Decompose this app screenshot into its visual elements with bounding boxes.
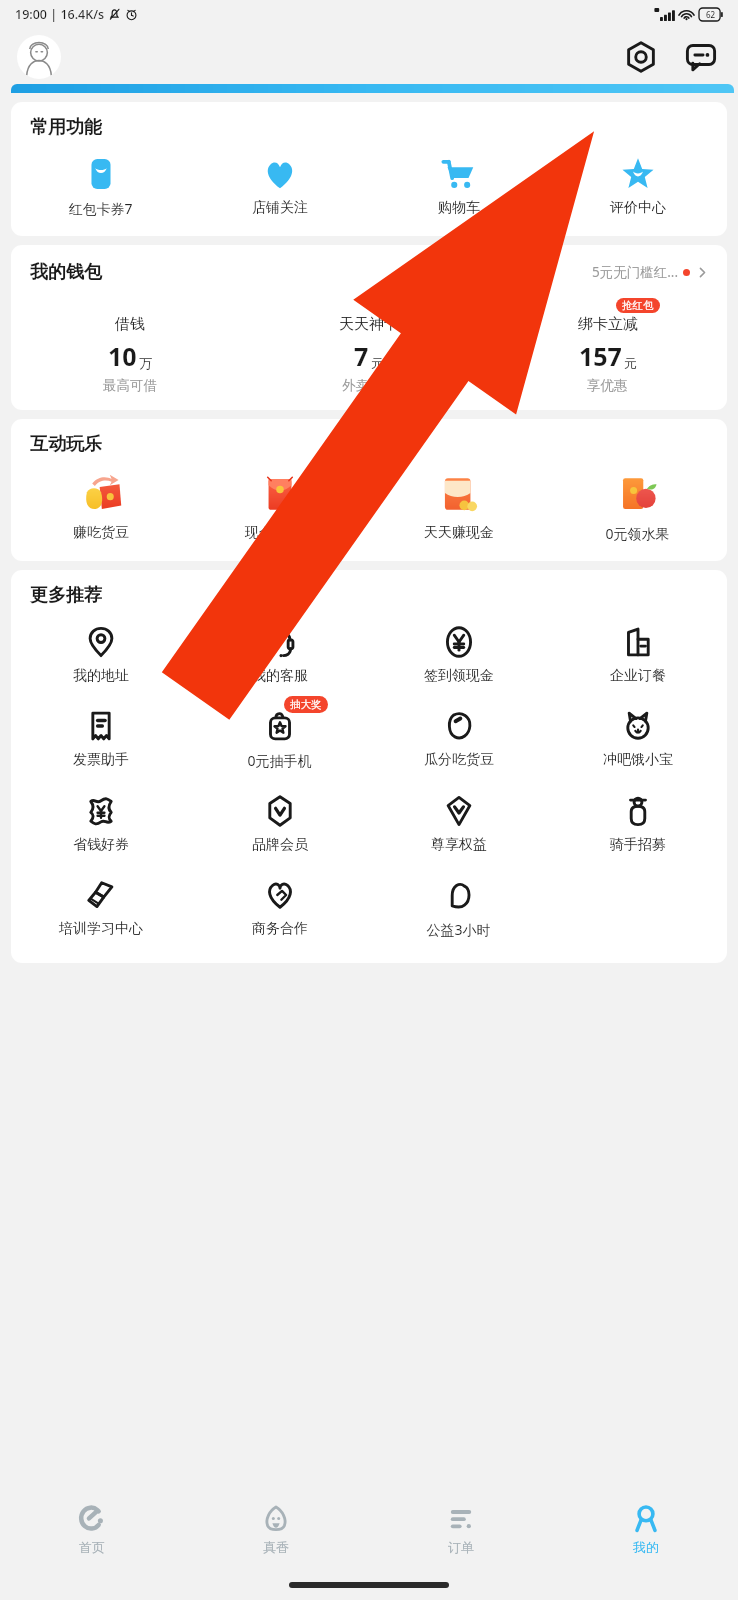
staticText: 省钱好券 xyxy=(73,836,129,854)
button[interactable]: 我的地址 xyxy=(11,623,190,687)
staticText: 我的地址 xyxy=(73,667,129,685)
button[interactable]: 省钱好券 xyxy=(11,792,190,856)
button[interactable]: 真香 xyxy=(184,1488,368,1570)
button[interactable]: 抢红包 xyxy=(488,295,727,394)
staticText: 瓜分吃货豆 xyxy=(424,751,494,769)
button[interactable]: 红包卡券7 xyxy=(11,155,190,220)
button[interactable]: 5元无门槛红... xyxy=(588,259,713,285)
button[interactable]: 公益3小时 xyxy=(369,876,548,941)
staticText: 首页 xyxy=(79,1539,105,1555)
button[interactable]: 商务合作 xyxy=(190,876,369,940)
button[interactable]: 瓜分吃货豆 xyxy=(369,707,548,771)
staticText: 5元无门槛红... xyxy=(592,263,679,281)
button[interactable]: 赚吃货豆 xyxy=(11,470,190,544)
button[interactable]: 天天神卡 xyxy=(249,295,488,394)
staticText: 骑手招募 xyxy=(610,836,666,854)
button[interactable]: 我的 xyxy=(553,1488,738,1570)
staticText: 抽大奖 xyxy=(290,698,322,711)
button[interactable]: 首页 xyxy=(0,1488,184,1570)
button[interactable]: 订单 xyxy=(368,1488,553,1570)
button[interactable]: 品牌会员 xyxy=(190,792,369,856)
staticText: 品牌会员 xyxy=(252,836,308,854)
staticText: 天天赚现金 xyxy=(424,524,494,542)
staticText: 62 xyxy=(706,9,716,20)
staticText: 真香 xyxy=(263,1539,289,1555)
staticText: 我的 xyxy=(633,1539,659,1555)
staticText: 更多推荐 xyxy=(30,584,102,607)
staticText: 商务合作 xyxy=(252,920,308,938)
staticText: 元 xyxy=(371,355,384,371)
button[interactable]: Profile avatar xyxy=(17,35,61,79)
staticText: 0元领水果 xyxy=(605,524,670,543)
staticText: 157 xyxy=(579,339,622,373)
staticText: 享优惠 xyxy=(587,377,628,394)
staticText: 企业订餐 xyxy=(610,667,666,685)
button[interactable]: 购物车 xyxy=(369,155,548,219)
staticText: 我的钱包 xyxy=(30,261,102,284)
staticText: 公益3小时 xyxy=(426,920,491,939)
staticText: 绑卡立减 xyxy=(578,315,638,334)
staticText: 10 xyxy=(108,339,137,373)
button[interactable]: 评价中心 xyxy=(548,155,727,219)
button[interactable]: 抽大奖 xyxy=(190,707,369,772)
staticText: 0元抽手机 xyxy=(247,751,312,770)
button[interactable]: 我的客服 xyxy=(190,623,369,687)
button[interactable]: 发票助手 xyxy=(11,707,190,771)
staticText: 万 xyxy=(139,355,152,371)
staticText: 冲吧饿小宝 xyxy=(603,751,673,769)
staticText: 尊享权益 xyxy=(431,836,487,854)
staticText: 发票助手 xyxy=(73,751,129,769)
staticText: 我的客服 xyxy=(252,667,308,685)
staticText: 订单 xyxy=(448,1539,474,1555)
staticText: 最高可借 xyxy=(103,377,157,394)
staticText: 互动玩乐 xyxy=(30,433,102,456)
button[interactable]: 冲吧饿小宝 xyxy=(548,707,727,771)
button[interactable]: 骑手招募 xyxy=(548,792,727,856)
staticText: 红包卡券7 xyxy=(68,199,133,218)
staticText: 购物车 xyxy=(438,199,480,217)
button[interactable]: Scan xyxy=(618,34,664,80)
staticText: 店铺关注 xyxy=(252,199,308,217)
staticText: 天天神卡 xyxy=(339,315,399,334)
staticText: 外卖红包 xyxy=(342,377,396,394)
staticText: 7 xyxy=(354,339,369,373)
button[interactable]: Messages xyxy=(678,34,724,80)
staticText: 常用功能 xyxy=(30,116,102,139)
staticText: 现金提款机 xyxy=(245,524,315,542)
staticText: 19:00 | 16.4K/s xyxy=(15,6,105,23)
staticText: 培训学习中心 xyxy=(59,920,143,938)
button[interactable]: 0元领水果 xyxy=(548,470,727,545)
button[interactable]: 天天赚现金 xyxy=(369,470,548,544)
staticText: 赚吃货豆 xyxy=(73,524,129,542)
staticText: 评价中心 xyxy=(610,199,666,217)
staticText: 签到领现金 xyxy=(424,667,494,685)
button[interactable]: 培训学习中心 xyxy=(11,876,190,940)
staticText: 抢红包 xyxy=(622,299,654,312)
button[interactable]: 现金提款机 xyxy=(190,470,369,544)
button[interactable]: 店铺关注 xyxy=(190,155,369,219)
button[interactable]: 借钱 xyxy=(11,295,249,394)
button[interactable]: 企业订餐 xyxy=(548,623,727,687)
staticText: 元 xyxy=(624,355,637,371)
staticText: 借钱 xyxy=(115,315,145,334)
button[interactable]: 尊享权益 xyxy=(369,792,548,856)
button[interactable]: 签到领现金 xyxy=(369,623,548,687)
